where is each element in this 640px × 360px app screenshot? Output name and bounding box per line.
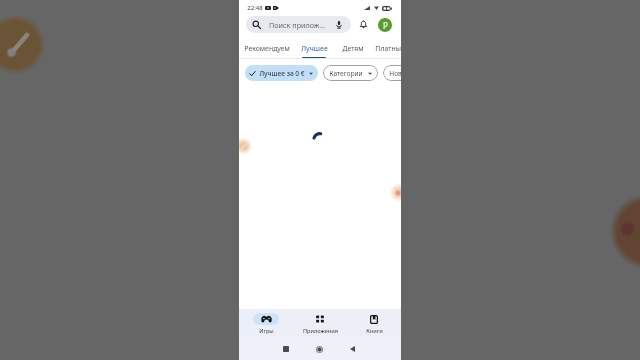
button[interactable]: Notifications — [357, 18, 370, 31]
staticText: 22:48 — [247, 4, 263, 12]
button[interactable]: Account — [378, 18, 392, 32]
button[interactable]: Поиск прилож… — [246, 16, 351, 33]
staticText: Лучшее за 0 € — [259, 69, 305, 78]
button[interactable]: Лучшее — [294, 38, 334, 59]
button[interactable]: Нов — [383, 65, 401, 81]
button[interactable]: Recent apps — [275, 338, 297, 360]
button[interactable]: Категории — [323, 65, 378, 81]
staticText: Категории — [329, 69, 363, 78]
staticText: Лучшее — [301, 44, 328, 53]
button[interactable]: Игры — [239, 309, 293, 337]
staticText: Платные — [375, 44, 401, 53]
button[interactable]: Лучшее за 0 € — [245, 65, 318, 81]
staticText: Нов — [389, 69, 401, 78]
button[interactable]: Платные — [371, 38, 401, 59]
staticText: Книги — [366, 327, 383, 334]
button[interactable]: Книги — [347, 309, 401, 337]
button[interactable]: Home — [308, 338, 330, 360]
button[interactable]: Рекомендуем — [242, 38, 292, 59]
staticText: Рекомендуем — [244, 44, 290, 53]
button[interactable]: Приложения — [293, 309, 347, 337]
staticText: Приложения — [303, 327, 338, 334]
staticText: Игры — [259, 327, 274, 334]
button[interactable]: Back — [341, 338, 363, 360]
staticText: Детям — [342, 44, 364, 53]
button[interactable]: Детям — [336, 38, 369, 59]
staticText: Поиск прилож… — [269, 20, 325, 30]
staticText: P — [383, 20, 388, 31]
